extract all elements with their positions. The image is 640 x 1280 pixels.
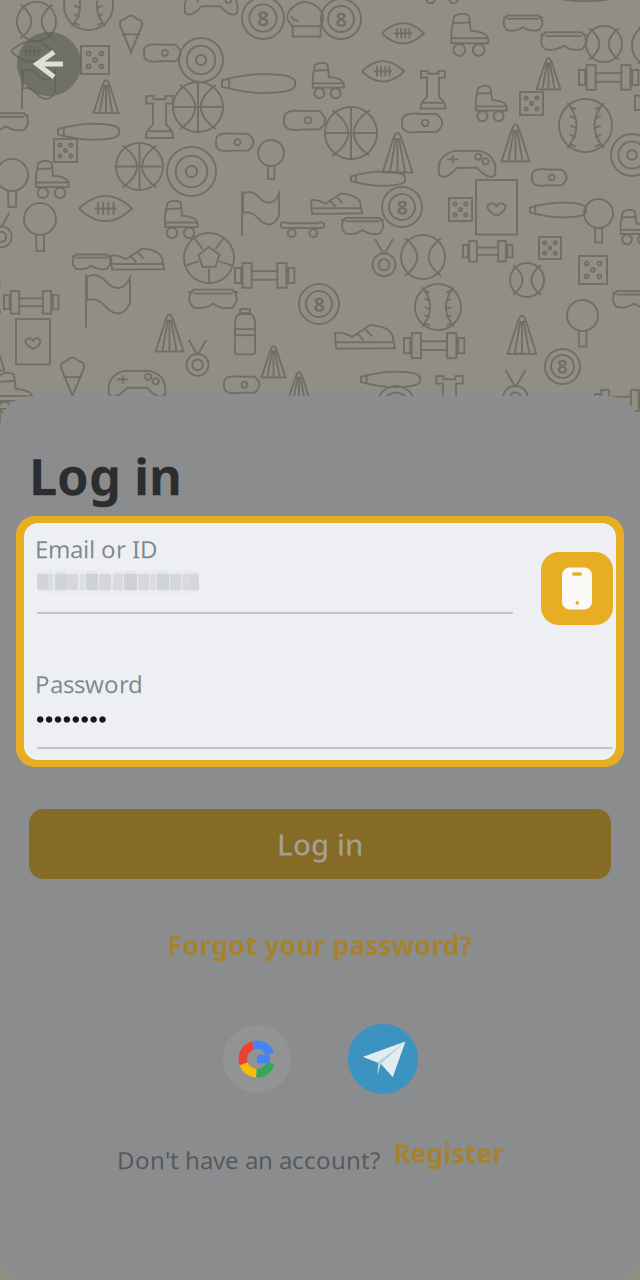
button[interactable]: Back (17, 32, 81, 96)
staticText: Don't have an account? (117, 1144, 380, 1176)
staticText: Email or ID (35, 533, 158, 565)
button[interactable]: Log in (29, 809, 611, 879)
staticText: 8 (257, 4, 269, 32)
button[interactable]: Continue with Telegram (348, 1024, 418, 1094)
button[interactable]: Register (389, 1132, 509, 1174)
staticText: Password (35, 668, 143, 700)
button[interactable]: Use phone number (541, 552, 613, 625)
staticText: Register (393, 1135, 504, 1171)
staticText: 8 (396, 194, 407, 220)
button[interactable]: Continue with Google (223, 1025, 291, 1093)
staticText: Forgot your password? (167, 927, 472, 963)
staticText: 8 (313, 291, 324, 317)
staticText: Log in (277, 824, 363, 863)
button[interactable]: Forgot your password? (29, 921, 611, 969)
staticText: 8 (557, 354, 568, 379)
staticText: Log in (29, 442, 182, 509)
staticText: 8 (335, 6, 346, 32)
